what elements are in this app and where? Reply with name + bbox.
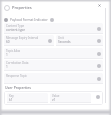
staticText: Key (9, 94, 14, 98)
other: Clear (48, 39, 52, 43)
staticText: Correlation Data (6, 61, 29, 65)
button[interactable]: Payload Format Indicator (4, 16, 54, 23)
staticText: Content Type (6, 24, 25, 28)
button[interactable]: Message Expiry Interval (4, 35, 54, 46)
staticText: 1 (6, 65, 8, 69)
staticText: Seconds (58, 40, 71, 44)
staticText: Unit (58, 36, 64, 40)
staticText: Topic Alias (6, 49, 21, 53)
staticText: Payload Format Indicator (10, 18, 48, 22)
staticText: Message Expiry Interval (6, 36, 39, 40)
button[interactable]: Unit (56, 35, 103, 46)
staticText: Value (52, 94, 60, 98)
button[interactable]: Topic Alias (4, 48, 103, 59)
button[interactable]: Close (96, 2, 103, 9)
other: Clear (97, 64, 101, 68)
button[interactable]: Response Topic (4, 73, 103, 84)
other: Clear (97, 39, 101, 43)
other: Help (50, 18, 54, 22)
button[interactable]: Correlation Data (4, 60, 103, 71)
button[interactable]: Content Type (4, 23, 103, 34)
staticText: v1 (52, 98, 56, 102)
button[interactable]: Key (7, 93, 48, 103)
staticText: content-type (6, 28, 26, 32)
staticText: Response Topic (6, 74, 27, 78)
staticText: Properties (12, 5, 32, 10)
button[interactable]: Delete (96, 95, 100, 99)
staticText: User Properties (5, 85, 32, 90)
other: Clear (97, 27, 101, 31)
staticText: 60 (6, 40, 10, 44)
other: Clear (97, 77, 101, 81)
staticText: 1 (6, 53, 8, 57)
staticText: k1 (9, 98, 13, 102)
other: Clear (97, 52, 101, 56)
button[interactable]: Value (50, 93, 91, 103)
